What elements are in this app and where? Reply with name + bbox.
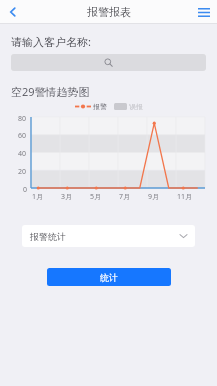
staticText: 5月 bbox=[90, 192, 102, 202]
staticText: 9月 bbox=[148, 192, 160, 202]
staticText: 请输入客户名称: bbox=[11, 34, 91, 49]
staticText: 7月 bbox=[119, 192, 131, 202]
staticText: 80 bbox=[18, 114, 27, 124]
staticText: 0 bbox=[23, 185, 28, 195]
button[interactable]: Menu bbox=[191, 0, 217, 24]
staticText: 统计 bbox=[100, 272, 118, 283]
staticText: 3月 bbox=[61, 192, 73, 202]
staticText: 误报 bbox=[129, 102, 143, 111]
staticText: 报警 bbox=[93, 102, 107, 111]
button[interactable]: 报警统计 bbox=[22, 225, 195, 247]
staticText: 1月 bbox=[32, 192, 44, 202]
button[interactable]: Back bbox=[0, 0, 26, 24]
staticText: 40 bbox=[18, 149, 27, 159]
staticText: 11月 bbox=[177, 192, 193, 202]
staticText: 空29警情趋势图 bbox=[11, 84, 90, 99]
button[interactable]: 统计 bbox=[47, 268, 171, 286]
button[interactable]: Search customer name bbox=[11, 54, 206, 71]
staticText: 报警统计 bbox=[30, 231, 66, 242]
staticText: 60 bbox=[18, 131, 27, 141]
staticText: 报警报表 bbox=[87, 5, 131, 19]
staticText: 20 bbox=[18, 167, 27, 177]
